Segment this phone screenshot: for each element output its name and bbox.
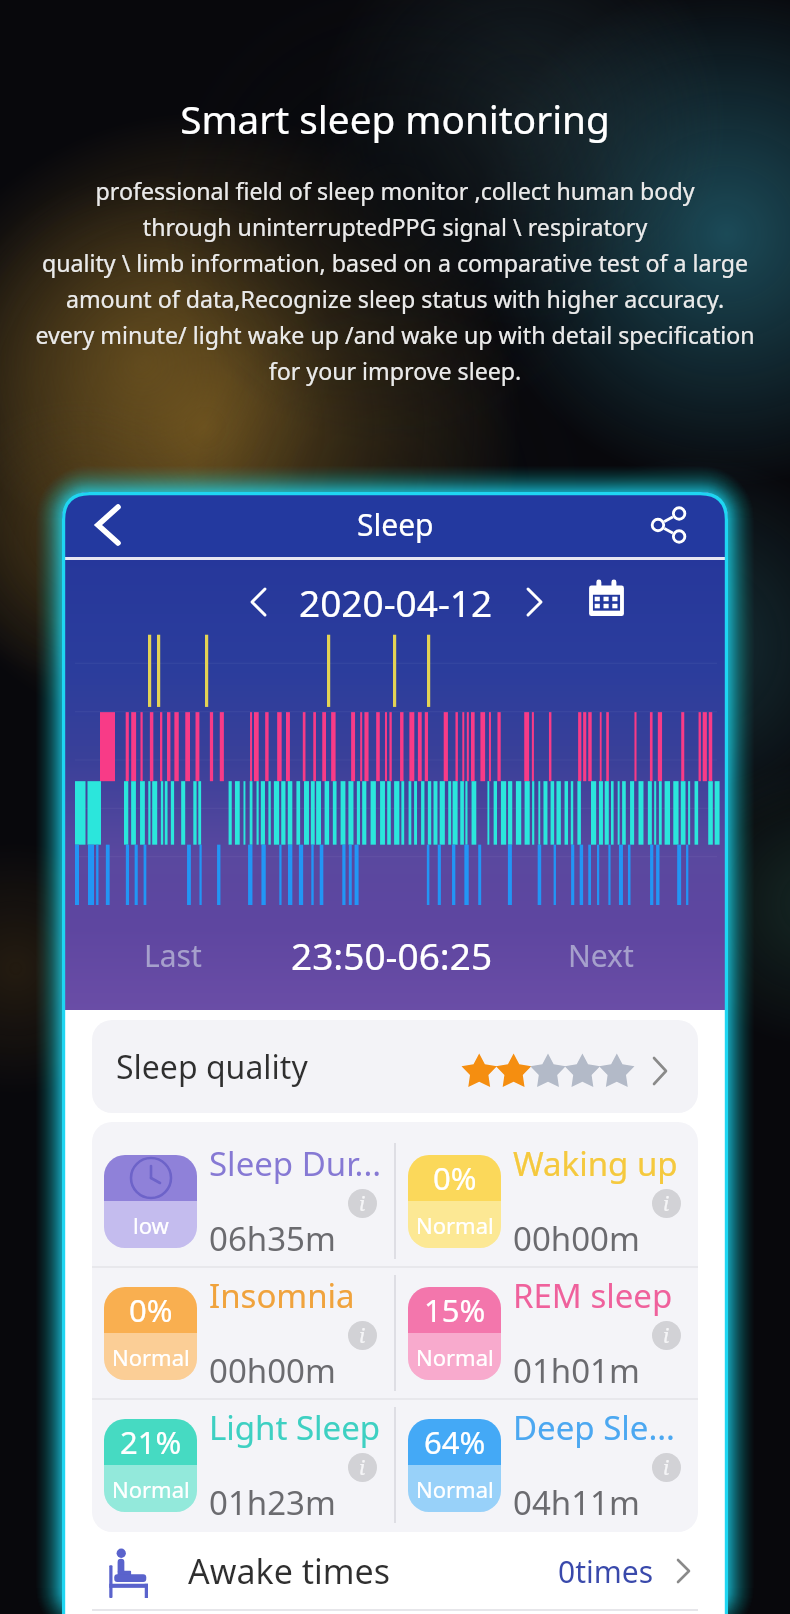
staticText: i: [663, 1454, 670, 1481]
button[interactable]: Info about Insomnia: [348, 1321, 377, 1350]
staticText: 0%: [129, 1289, 173, 1331]
button[interactable]: Share: [644, 500, 694, 550]
button[interactable]: Info about Waking up: [652, 1189, 681, 1218]
button[interactable]: Sleep quality: [92, 1020, 698, 1113]
staticText: i: [359, 1190, 366, 1217]
staticText: i: [359, 1322, 366, 1349]
button[interactable]: Awake times: [92, 1533, 698, 1609]
button[interactable]: Info about Sleep Dur...: [348, 1189, 377, 1218]
button[interactable]: Info about Deep Sle...: [652, 1453, 681, 1482]
staticText: 23:50-06:25: [291, 930, 493, 980]
staticText: Sleep: [357, 504, 434, 545]
staticText: 01h23m: [209, 1480, 336, 1525]
staticText: Insomnia: [209, 1273, 355, 1318]
staticText: 00h00m: [513, 1216, 640, 1261]
staticText: 0times: [558, 1551, 654, 1592]
staticText: Deep Sle...: [513, 1405, 675, 1450]
staticText: Normal: [416, 1210, 494, 1240]
staticText: Sleep quality: [116, 1045, 308, 1089]
staticText: Light Sleep: [209, 1405, 381, 1450]
button[interactable]: 21%: [92, 1400, 394, 1530]
staticText: Smart sleep monitoring: [0, 93, 790, 146]
button[interactable]: Calendar: [582, 578, 630, 626]
button[interactable]: Previous day: [236, 580, 280, 624]
staticText: Sleep Dur...: [209, 1141, 382, 1186]
staticText: 2020-04-12: [299, 577, 493, 627]
button[interactable]: Last: [144, 935, 202, 976]
button[interactable]: Info about REM sleep: [652, 1321, 681, 1350]
staticText: i: [359, 1454, 366, 1481]
staticText: Normal: [112, 1342, 190, 1372]
button[interactable]: Back: [82, 499, 134, 551]
staticText: Waking up: [513, 1141, 678, 1186]
staticText: REM sleep: [513, 1273, 673, 1318]
staticText: 64%: [424, 1421, 486, 1463]
staticText: 00h00m: [209, 1348, 336, 1393]
button[interactable]: Info about Light Sleep: [348, 1453, 377, 1482]
staticText: Normal: [112, 1474, 190, 1504]
button[interactable]: 0%: [396, 1136, 698, 1266]
button[interactable]: 15%: [396, 1268, 698, 1398]
button[interactable]: Next day: [513, 580, 557, 624]
staticText: 01h01m: [513, 1348, 640, 1393]
staticText: 0%: [433, 1157, 477, 1199]
staticText: 04h11m: [513, 1480, 640, 1525]
staticText: i: [663, 1190, 670, 1217]
button[interactable]: Next: [568, 935, 634, 976]
staticText: professional field of sleep monitor ,col…: [0, 175, 790, 387]
staticText: 06h35m: [209, 1216, 336, 1261]
staticText: 21%: [120, 1421, 182, 1463]
button[interactable]: 0%: [92, 1268, 394, 1398]
staticText: 15%: [424, 1289, 486, 1331]
button[interactable]: 64%: [396, 1400, 698, 1530]
staticText: Normal: [416, 1474, 494, 1504]
staticText: i: [663, 1322, 670, 1349]
staticText: Awake times: [188, 1548, 390, 1594]
staticText: low: [133, 1210, 169, 1240]
button[interactable]: low: [92, 1136, 394, 1266]
staticText: Normal: [416, 1342, 494, 1372]
